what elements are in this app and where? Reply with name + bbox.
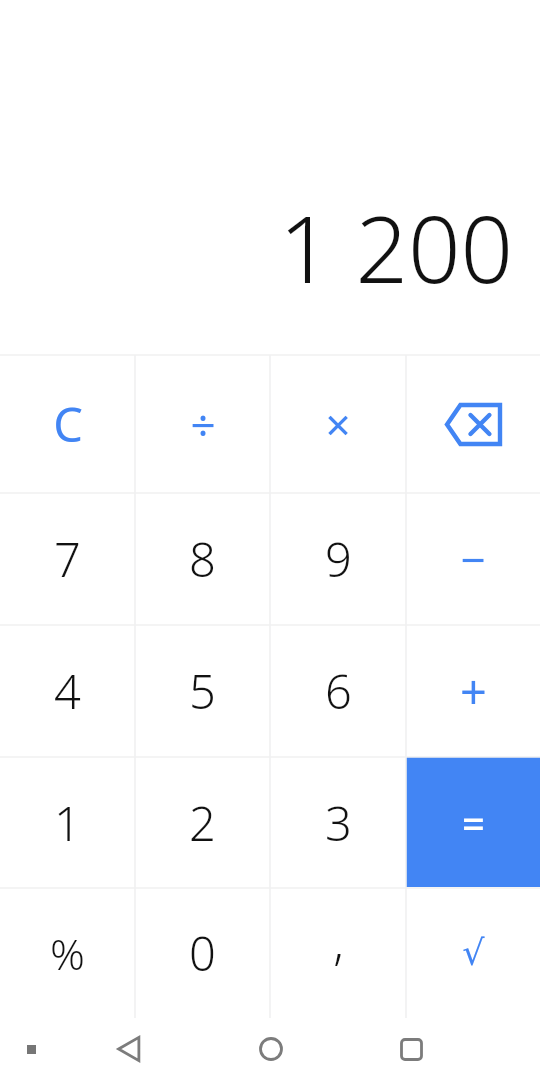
staticText: 3	[325, 791, 352, 855]
button[interactable]: 7	[0, 493, 135, 625]
staticText: 4	[54, 659, 81, 723]
staticText: −	[460, 529, 486, 589]
staticText: 5	[189, 659, 216, 723]
button[interactable]: %	[0, 888, 135, 1018]
button[interactable]: 6	[270, 625, 406, 757]
staticText: %	[50, 924, 85, 983]
button[interactable]: 2	[135, 757, 270, 888]
staticText: 8	[189, 527, 216, 591]
staticText: +	[460, 659, 487, 723]
staticText: 1	[54, 791, 81, 855]
button[interactable]: ,	[270, 888, 406, 1018]
button[interactable]: Home	[200, 1018, 341, 1080]
staticText: 9	[325, 527, 352, 591]
button[interactable]: 4	[0, 625, 135, 757]
button[interactable]: C	[0, 355, 135, 493]
staticText: 0	[189, 921, 216, 985]
button[interactable]: Back	[58, 1018, 200, 1080]
button[interactable]: ÷	[135, 355, 270, 493]
button[interactable]: 3	[270, 757, 406, 888]
staticText: √	[462, 933, 485, 974]
staticText: 1 200	[278, 185, 513, 310]
button[interactable]: Backspace	[406, 355, 540, 493]
button[interactable]: 1	[0, 757, 135, 888]
button[interactable]: 0	[135, 888, 270, 1018]
button[interactable]: 8	[135, 493, 270, 625]
staticText: 2	[189, 791, 216, 855]
staticText: C	[53, 392, 83, 456]
button[interactable]: 5	[135, 625, 270, 757]
button[interactable]: Recent apps	[341, 1018, 482, 1080]
button[interactable]: =	[406, 757, 540, 888]
button[interactable]: +	[406, 625, 540, 757]
staticText: 6	[325, 659, 352, 723]
staticText: 7	[54, 527, 81, 591]
staticText: ,	[333, 910, 344, 974]
staticText: ×	[325, 394, 351, 454]
staticText: =	[462, 796, 485, 850]
button[interactable]: −	[406, 493, 540, 625]
button[interactable]: ×	[270, 355, 406, 493]
button[interactable]: √	[406, 888, 540, 1018]
staticText: ÷	[190, 394, 216, 454]
button[interactable]: 9	[270, 493, 406, 625]
